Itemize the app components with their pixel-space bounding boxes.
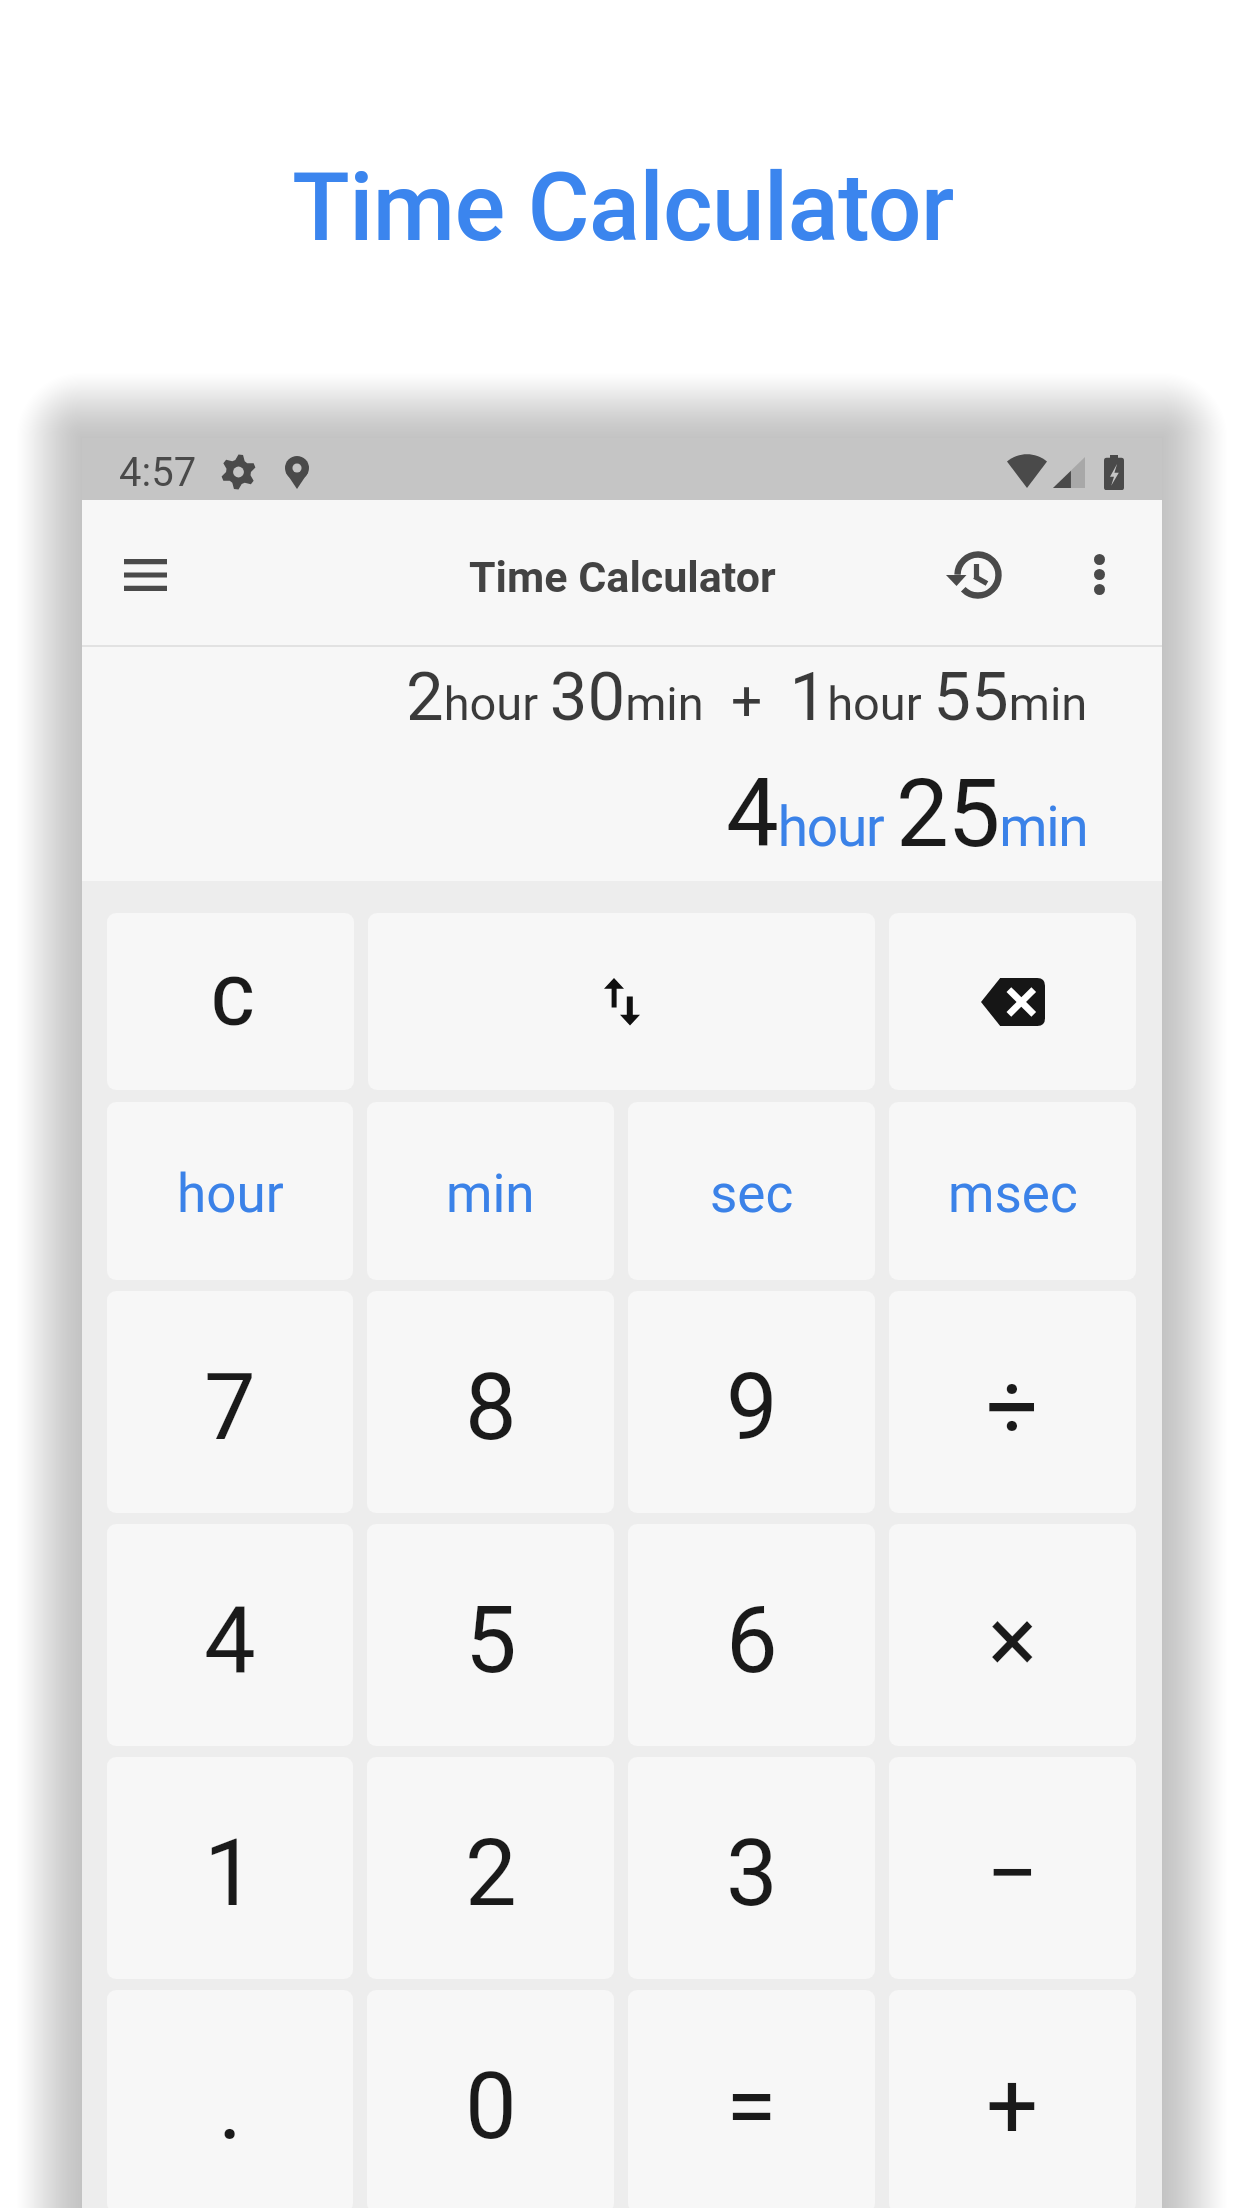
staticText: 4 [204, 1587, 256, 1695]
button[interactable]: 6 [628, 1524, 875, 1746]
button[interactable]: sec [628, 1102, 875, 1280]
staticText: 0 [465, 2053, 517, 2161]
staticText: 5 [465, 1587, 517, 1695]
staticText: 3 [726, 1820, 778, 1928]
button[interactable]: min [367, 1102, 614, 1280]
staticText: C [211, 963, 255, 1042]
button[interactable]: + [889, 1990, 1136, 2208]
staticText: ÷ [986, 1354, 1039, 1462]
staticText: . [218, 2053, 243, 2161]
button[interactable]: 2 [367, 1757, 614, 1979]
staticText: msec [948, 1163, 1078, 1225]
button[interactable]: 4 [107, 1524, 353, 1746]
button[interactable]: 3 [628, 1757, 875, 1979]
staticText: 4:57 [119, 449, 197, 496]
staticText: 4hour 25min [726, 759, 1088, 869]
staticText: × [988, 1587, 1038, 1695]
button[interactable]: = [628, 1990, 875, 2208]
staticText: 7 [204, 1354, 256, 1462]
staticText: 1 [204, 1820, 256, 1928]
staticText: min [446, 1163, 535, 1225]
button[interactable]: − [889, 1757, 1136, 1979]
staticText: 9 [726, 1354, 778, 1462]
button[interactable]: × [889, 1524, 1136, 1746]
button[interactable]: 8 [367, 1291, 614, 1513]
staticText: 2hour 30min + 1hour 55min [406, 658, 1088, 737]
button[interactable]: 1 [107, 1757, 353, 1979]
staticText: 8 [465, 1354, 517, 1462]
button[interactable]: msec [889, 1102, 1136, 1280]
button[interactable]: 5 [367, 1524, 614, 1746]
button[interactable]: Backspace [889, 913, 1136, 1090]
button[interactable]: . [107, 1990, 353, 2208]
staticText: Time Calculator [2, 152, 1242, 263]
button[interactable]: hour [107, 1102, 353, 1280]
staticText: 6 [726, 1587, 778, 1695]
button[interactable]: 9 [628, 1291, 875, 1513]
button[interactable]: History [930, 526, 1026, 622]
staticText: sec [710, 1163, 794, 1225]
button[interactable]: C [107, 913, 354, 1090]
button[interactable]: More options [1051, 526, 1147, 622]
button[interactable]: Open navigation menu [97, 526, 193, 622]
button[interactable]: ÷ [889, 1291, 1136, 1513]
staticText: hour [177, 1163, 284, 1225]
button[interactable]: Swap operands [368, 913, 875, 1090]
staticText: 2 [465, 1820, 517, 1928]
staticText: + [986, 2053, 1039, 2161]
button[interactable]: 7 [107, 1291, 353, 1513]
staticText: Time Calculator [469, 552, 776, 602]
button[interactable]: 0 [367, 1990, 614, 2208]
staticText: = [726, 2053, 777, 2161]
staticText: − [986, 1820, 1039, 1928]
